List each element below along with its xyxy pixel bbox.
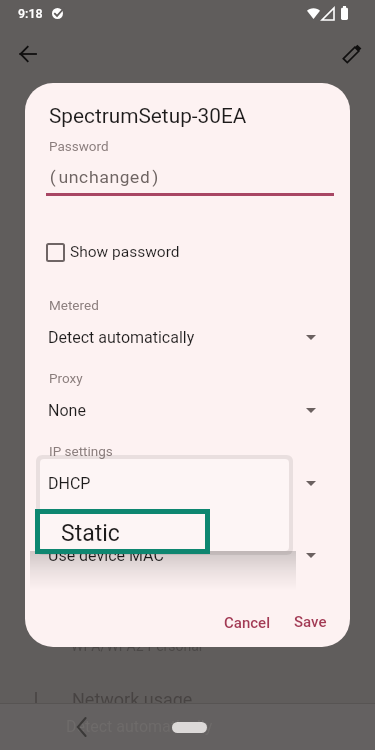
staticText: 9:18: [18, 6, 43, 21]
staticText: Detect automatically: [66, 717, 213, 736]
staticText: Show password: [70, 243, 180, 261]
button[interactable]: Show password: [43, 237, 180, 267]
staticText: Save: [294, 613, 327, 631]
staticText: IP settings: [49, 443, 113, 459]
staticText: SpectrumSetup-30EA: [49, 104, 247, 128]
button[interactable]: Edit: [332, 34, 372, 74]
staticText: Detect automatically: [48, 328, 195, 347]
staticText: Static: [61, 520, 120, 547]
staticText: (unchanged): [48, 165, 161, 187]
staticText: Cancel: [224, 614, 271, 632]
staticText: None: [48, 401, 86, 420]
button[interactable]: DHCP: [40, 459, 289, 505]
button[interactable]: Proxy: [49, 370, 326, 425]
staticText: Static: [48, 474, 89, 493]
button[interactable]: Back: [8, 34, 48, 74]
button[interactable]: Save: [282, 603, 339, 641]
staticText: Proxy: [49, 370, 83, 386]
staticText: DHCP: [48, 474, 91, 493]
staticText: Metered: [49, 297, 99, 313]
staticText: Password: [49, 138, 109, 154]
staticText: WPA/WPA2-Personal: [71, 638, 203, 654]
button[interactable]: Cancel: [212, 604, 283, 642]
staticText: Use device MAC: [48, 546, 164, 565]
staticText: Network usage: [72, 689, 193, 710]
staticText: Privacy: [49, 515, 93, 531]
button[interactable]: Privacy: [49, 515, 326, 570]
button[interactable]: Static: [40, 505, 289, 551]
other: Back: [76, 718, 88, 736]
button[interactable]: Metered: [49, 297, 326, 352]
button[interactable]: IP settings: [49, 443, 326, 498]
